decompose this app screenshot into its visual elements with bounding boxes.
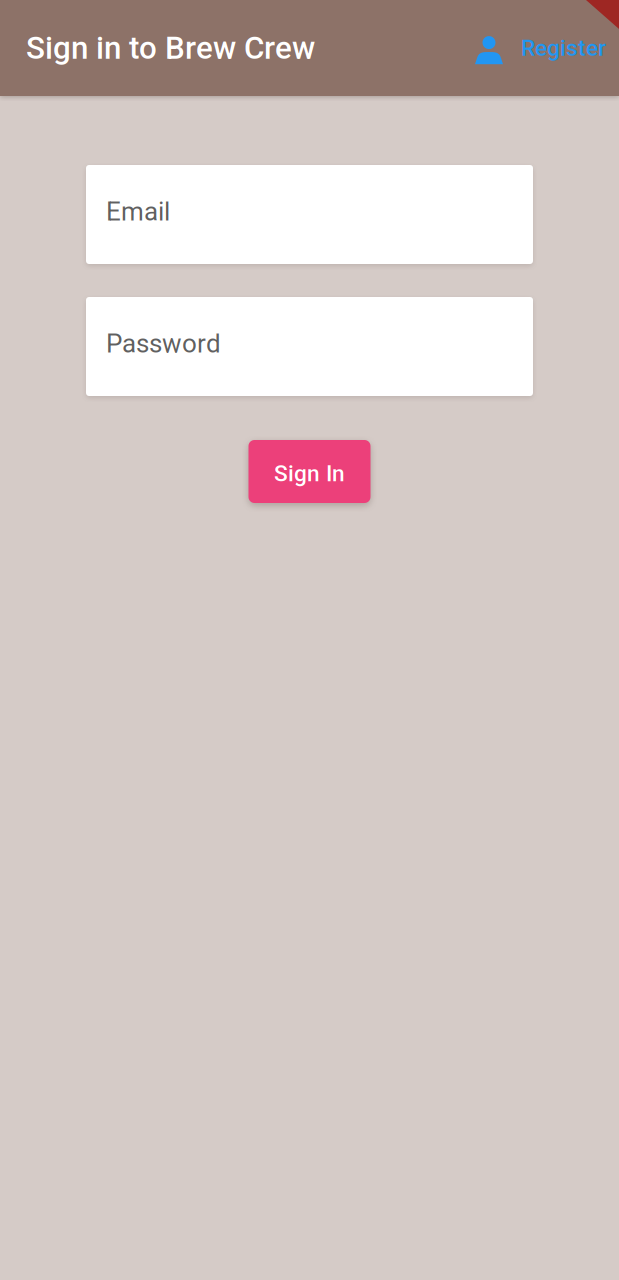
staticText: Email <box>106 196 170 227</box>
staticText: Password <box>106 328 221 359</box>
button[interactable]: Sign In <box>248 440 370 503</box>
staticText: Sign In <box>274 460 345 487</box>
staticText: Sign in to Brew Crew <box>26 30 315 66</box>
staticText: Register <box>521 35 606 61</box>
button[interactable]: Register <box>474 25 606 71</box>
